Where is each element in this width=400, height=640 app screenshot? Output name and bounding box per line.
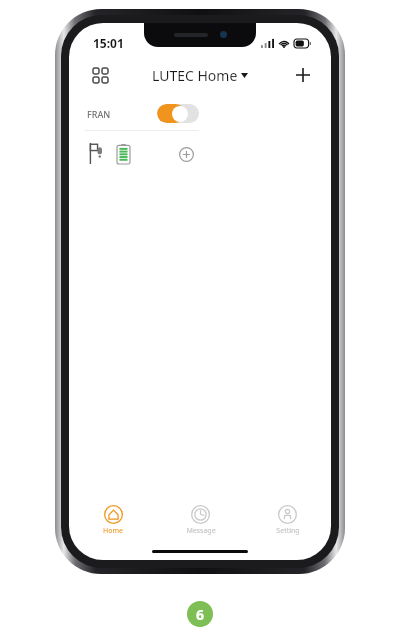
button[interactable]: LUTEC Home [152,66,248,85]
staticText: 15:01 [93,35,124,51]
button[interactable]: Message [157,502,244,536]
button[interactable]: Add device [287,59,319,91]
button[interactable]: FRAN [77,97,207,176]
button[interactable]: Home [69,502,157,536]
staticText: Home [103,526,123,536]
staticText: Message [186,526,216,536]
staticText: Setting [276,526,300,536]
button[interactable]: Power toggle [157,104,199,123]
staticText: LUTEC Home [152,66,238,85]
button[interactable]: Add accessory [175,143,197,165]
button[interactable]: Rooms [83,59,117,91]
staticText: 6 [196,605,205,624]
button[interactable]: Setting [244,502,331,536]
staticText: FRAN [87,108,111,120]
